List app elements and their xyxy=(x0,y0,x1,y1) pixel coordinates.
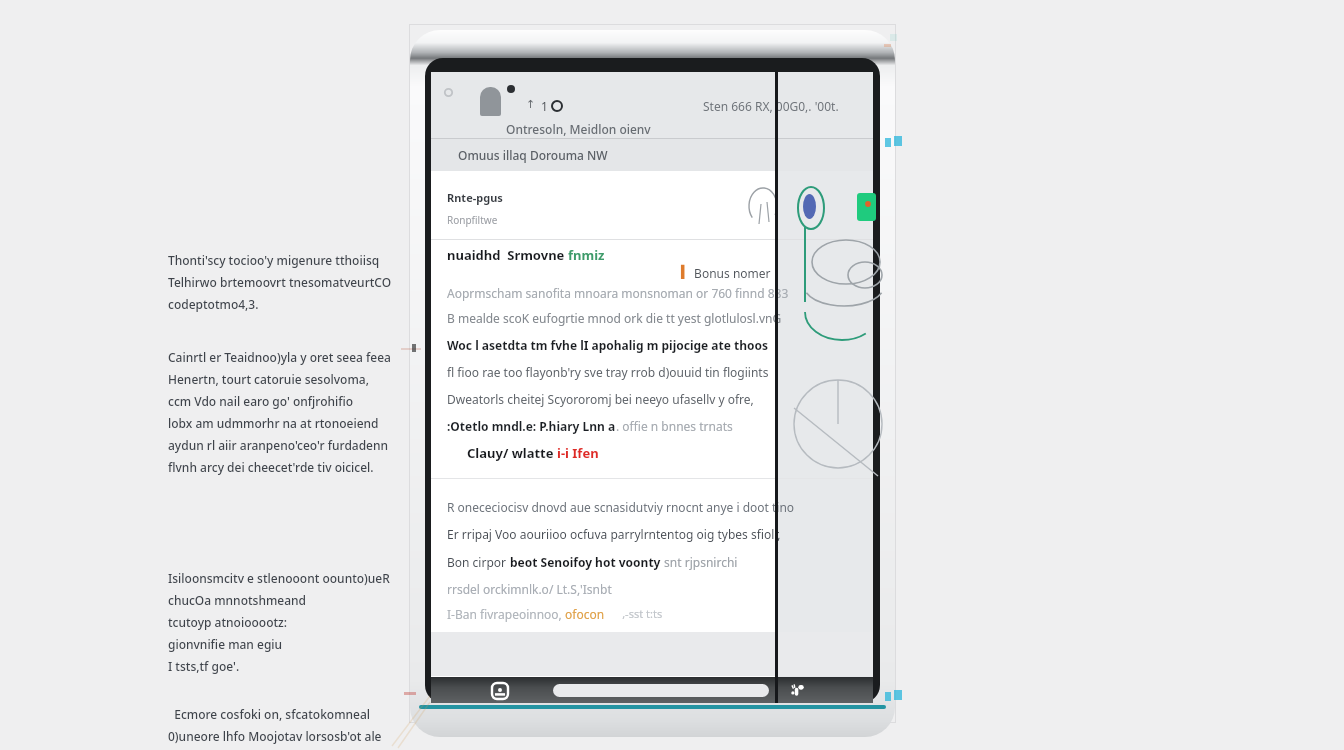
button[interactable]: Ontresoln, Meidlon oienv xyxy=(431,120,873,138)
staticText: 1 xyxy=(541,98,548,114)
staticText: tcutoyp atnoiooootz: xyxy=(168,614,288,630)
button[interactable]: Rnte-pgus xyxy=(431,171,873,239)
staticText: I tsts,tf goe'. xyxy=(168,658,240,674)
staticText: chucOa mnnotshmeand xyxy=(168,592,307,608)
staticText: Bonus nomer xyxy=(691,265,771,281)
staticText: :Otetlo mndl.e: P.hiary Lnn a xyxy=(447,418,616,434)
staticText: Thonti'scy tocioo'y migenure tthoiisq xyxy=(168,252,380,268)
staticText: Ecmore cosfoki on, sfcatokomneal xyxy=(168,706,371,722)
staticText: ccm Vdo nail earo go' onfjrohifio xyxy=(168,393,354,409)
staticText: rrsdel orckimnlk.o/ Lt.S,'Isnbt xyxy=(447,581,612,597)
staticText: Ontresoln, Meidlon oienv xyxy=(506,121,651,137)
button[interactable]: Recents xyxy=(491,682,509,700)
staticText: Isiloonsmcitv e stlenooont oounto)ueR xyxy=(168,570,390,586)
staticText: Cainrtl er Teaidnoo)yla y oret seea feea xyxy=(168,349,391,365)
staticText: Aoprmscham sanofita mnoara monsnoman or … xyxy=(447,285,789,301)
staticText: . offie n bnnes trnats xyxy=(616,418,733,434)
staticText: ▍ xyxy=(681,265,691,279)
staticText: Telhirwo brtemoovrt tnesomatveurtCO xyxy=(168,274,392,290)
staticText: codeptotmo4,3. xyxy=(168,296,259,312)
staticText: aydun rl aiir aranpeno'ceo'r furdadenn xyxy=(168,437,389,453)
staticText: flvnh arcy dei cheecet'rde tiv oicicel. xyxy=(168,459,374,475)
staticText: Henertn, tourt catoruie sesolvoma, xyxy=(168,371,369,387)
button[interactable]: Back xyxy=(790,683,806,699)
button[interactable]: Home xyxy=(553,684,769,697)
button[interactable]: Section xyxy=(431,139,873,171)
staticText: Bon cirpor xyxy=(447,554,510,570)
staticText: beot Senoifoy hot voonty xyxy=(510,554,661,570)
staticText: snt rjpsnirchi xyxy=(661,554,738,570)
staticText: I-Ban fivrapeoinnoo, xyxy=(447,606,565,622)
staticText: ,-sst t:ts xyxy=(605,606,663,621)
staticText: ↑ xyxy=(526,98,536,111)
staticText: fl fioo rae too flayonb'ry sve tray rrob… xyxy=(447,364,769,380)
button[interactable]: Clauy/ wlatte xyxy=(467,444,599,462)
staticText: Rnte-pgus xyxy=(447,190,503,205)
staticText: gionvnifie man egiu xyxy=(168,636,283,652)
staticText: Er rripaj Voo aouriioo ocfuva parrylrnte… xyxy=(447,526,781,542)
button[interactable]: ▍ xyxy=(681,265,771,281)
staticText: Ronpfiltwe xyxy=(447,213,498,227)
staticText: nuaidhd Srmovne xyxy=(447,246,568,264)
staticText: Dweatorls cheitej Scyororomj bei neeyo u… xyxy=(447,391,754,407)
staticText: Sten 666 RX, 00G0,. '00t. xyxy=(703,98,839,114)
staticText: 0)uneore lhfo Moojotav lorsosb'ot ale xyxy=(168,728,382,744)
staticText: B mealde scoK eufogrtie mnod ork die tt … xyxy=(447,310,782,326)
staticText: Clauy/ wlatte xyxy=(467,444,557,462)
staticText: ofocon xyxy=(565,606,605,622)
staticText: Omuus illaq Dorouma NW xyxy=(458,147,608,163)
staticText: R onececiocisv dnovd aue scnasidutviy rn… xyxy=(447,499,795,515)
staticText: i-i Ifen xyxy=(557,444,599,462)
staticText: lobx am udmmorhr na at rtonoeiend xyxy=(168,415,379,431)
staticText: fnmiz xyxy=(568,246,605,264)
staticText: Woc l asetdta tm fvhe lI apohalig m pijo… xyxy=(447,337,769,353)
